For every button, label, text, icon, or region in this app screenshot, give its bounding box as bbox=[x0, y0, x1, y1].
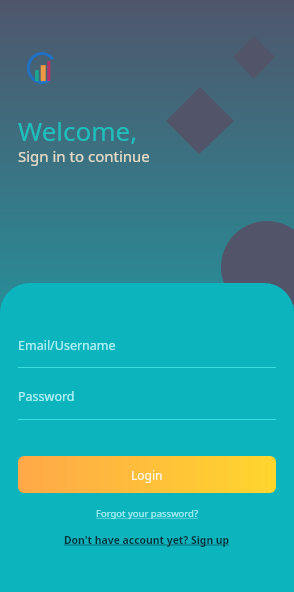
other: App logo bbox=[27, 52, 57, 84]
staticText: Email/Username bbox=[18, 337, 116, 354]
staticText: Password bbox=[18, 388, 75, 405]
button[interactable]: Don't have account yet? Sign up bbox=[64, 533, 230, 547]
staticText: Login bbox=[131, 467, 163, 483]
staticText: Welcome, bbox=[18, 113, 138, 148]
staticText: Sign in to continue bbox=[18, 146, 150, 166]
button[interactable]: Forgot your password? bbox=[96, 507, 199, 520]
button[interactable]: Login bbox=[18, 456, 276, 493]
